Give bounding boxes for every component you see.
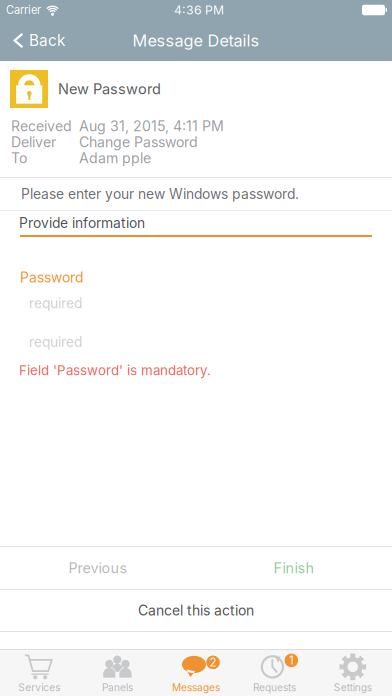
staticText: Requests	[253, 681, 296, 694]
staticText: Finish	[273, 559, 314, 577]
staticText: Provide information	[19, 215, 145, 231]
staticText: To	[11, 149, 27, 166]
staticText: 1	[289, 653, 294, 667]
staticText: Cancel this action	[138, 602, 254, 619]
button[interactable]: Settings	[314, 649, 392, 696]
staticText: Password	[20, 269, 83, 286]
staticText: 4:36 PM	[174, 3, 224, 17]
staticText: Back	[29, 31, 65, 50]
staticText: 2	[209, 655, 216, 669]
staticText: Carrier	[6, 3, 41, 17]
button[interactable]: Previous	[0, 547, 196, 589]
staticText: Change Password	[79, 133, 198, 150]
button[interactable]: Finish	[196, 547, 392, 589]
staticText: required	[29, 334, 82, 350]
staticText: Deliver	[11, 133, 56, 150]
button[interactable]: Back	[0, 25, 75, 56]
staticText: Settings	[334, 681, 372, 694]
staticText: Received	[11, 117, 72, 134]
staticText: Adam pple	[79, 149, 151, 166]
staticText: Field 'Password' is mandatory.	[19, 362, 211, 378]
button[interactable]: Services	[0, 649, 78, 696]
staticText: New Password	[58, 80, 161, 98]
button[interactable]: Panels	[78, 649, 157, 696]
button[interactable]: 1	[235, 649, 314, 696]
staticText: Aug 31, 2015, 4:11 PM	[79, 117, 224, 134]
staticText: Panels	[102, 681, 133, 694]
staticText: Message Details	[132, 31, 259, 50]
button[interactable]: 2	[157, 649, 235, 696]
staticText: Please enter your new Windows password.	[21, 186, 299, 202]
staticText: required	[29, 295, 82, 312]
staticText: Services	[18, 681, 60, 694]
staticText: Previous	[68, 559, 127, 577]
staticText: Messages	[172, 681, 220, 694]
button[interactable]: Cancel this action	[0, 590, 392, 631]
